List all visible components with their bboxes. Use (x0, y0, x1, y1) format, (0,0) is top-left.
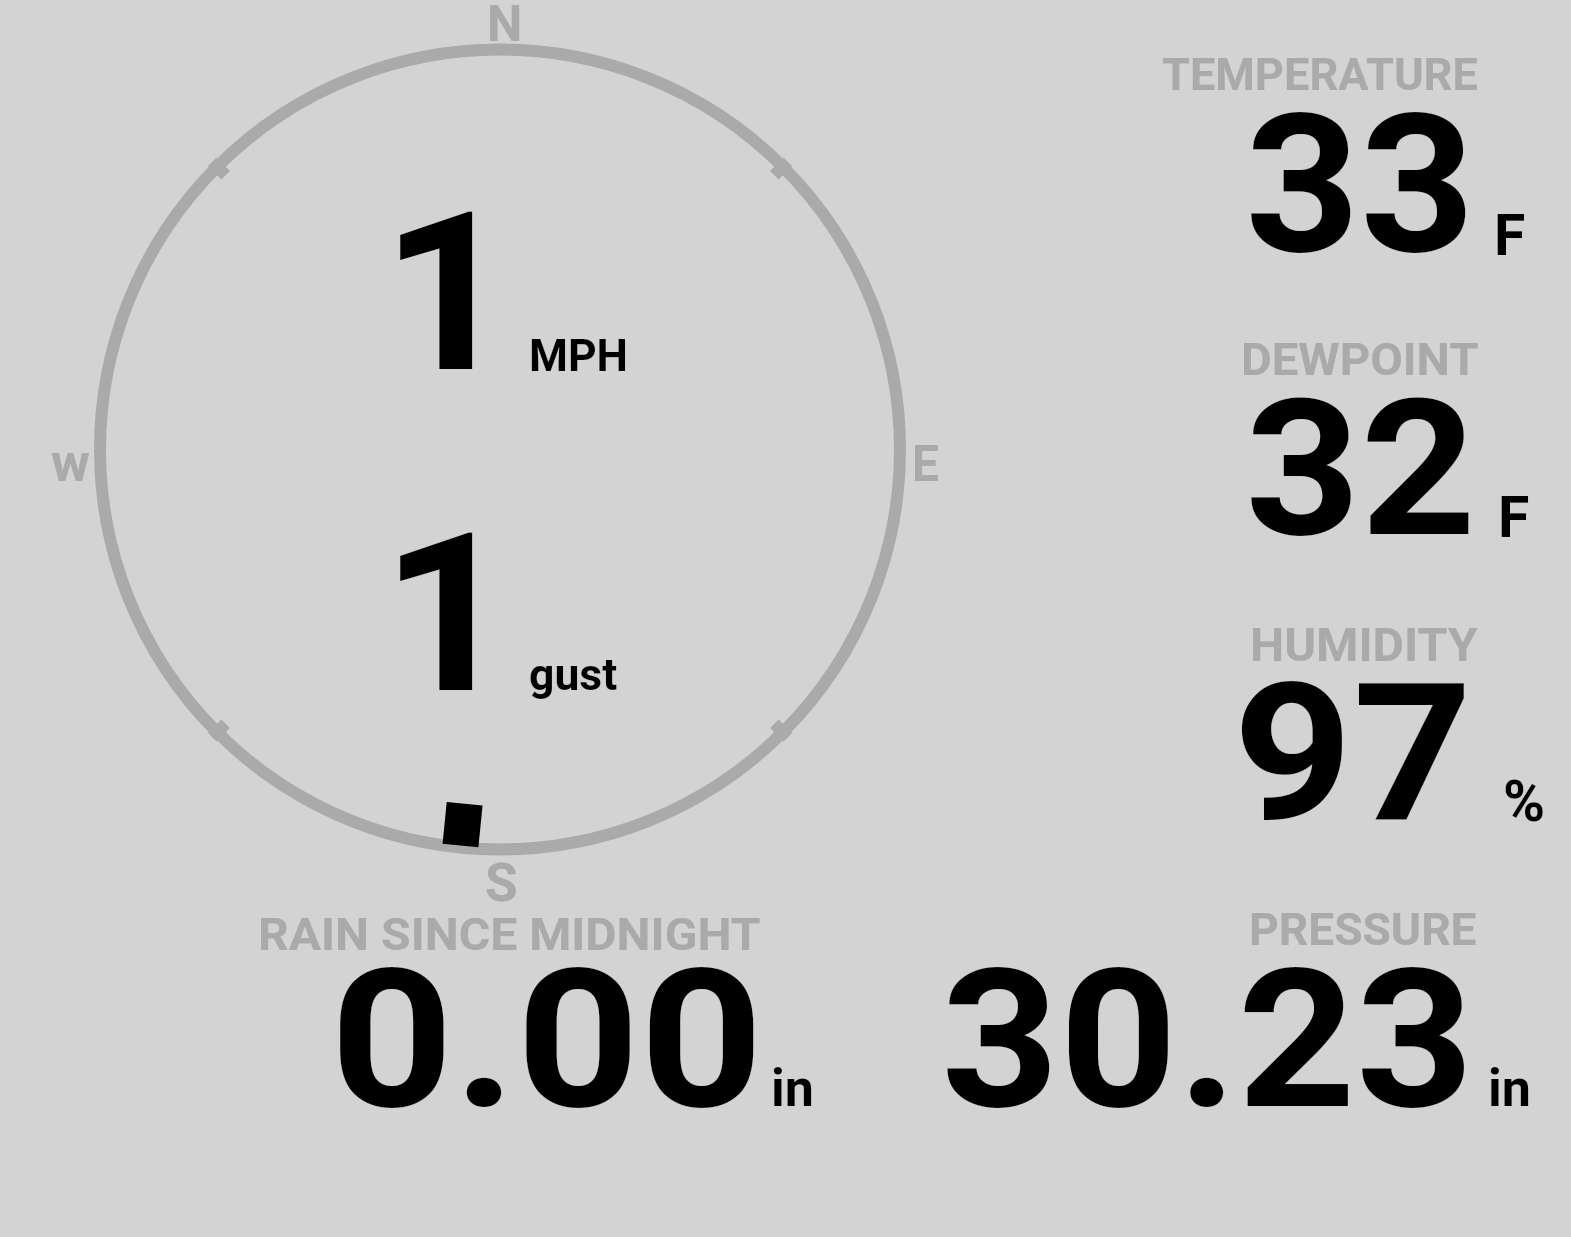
staticText: S (485, 852, 518, 914)
staticText: 1 (381, 165, 516, 423)
staticText: PRESSURE (1249, 904, 1477, 956)
staticText: MPH (529, 330, 629, 382)
staticText: E (912, 435, 940, 494)
staticText: gust (529, 649, 618, 701)
staticText: F (1494, 202, 1526, 269)
staticText: 33 (1245, 72, 1476, 298)
button[interactable]: Dewpoint 32 degrees Fahrenheit (1150, 325, 1550, 565)
staticText: F (1498, 484, 1530, 551)
staticText: 97 (1233, 642, 1473, 866)
staticText: TEMPERATURE (1162, 49, 1478, 101)
button[interactable]: Humidity 97 percent (1150, 610, 1550, 850)
staticText: w (51, 432, 90, 494)
staticText: in (771, 1058, 814, 1119)
staticText: DEWPOINT (1241, 334, 1479, 386)
staticText: 0.00 (330, 927, 764, 1153)
button[interactable]: Temperature 33 degrees Fahrenheit (1150, 40, 1550, 280)
staticText: 1 (381, 486, 516, 744)
staticText: 32 (1245, 359, 1476, 580)
staticText: in (1488, 1058, 1531, 1119)
staticText: N (487, 0, 523, 54)
staticText: % (1503, 768, 1546, 835)
staticText: 30.23 (941, 927, 1475, 1153)
staticText: HUMIDITY (1250, 618, 1478, 672)
button[interactable]: Wind direction compass (90, 40, 910, 860)
button[interactable]: Rain since midnight 0.00 inches (250, 900, 830, 1130)
staticText: RAIN SINCE MIDNIGHT (258, 909, 761, 961)
button[interactable]: Pressure 30.23 inches (930, 900, 1550, 1130)
